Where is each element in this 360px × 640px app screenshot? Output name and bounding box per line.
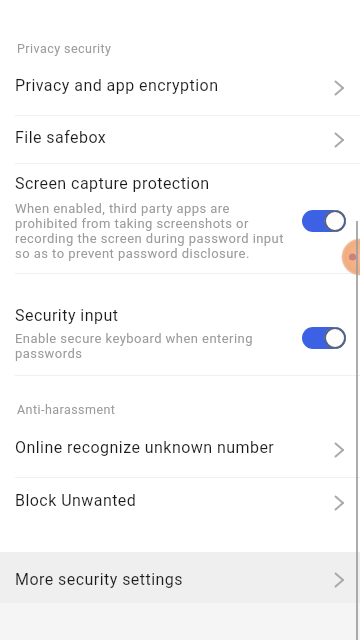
button[interactable]: File safebox [0, 116, 360, 163]
button[interactable]: Security input [0, 274, 360, 375]
button[interactable]: Online recognize unknown number [0, 424, 360, 477]
staticText: Security input [15, 306, 119, 325]
staticText: Anti-harassment [17, 402, 116, 417]
staticText: File safebox [15, 128, 107, 147]
staticText: Screen capture protection [15, 174, 210, 193]
button[interactable]: Privacy and app encryption [0, 64, 360, 115]
button[interactable] [302, 327, 346, 349]
staticText: When enabled, third party apps are prohi… [15, 201, 284, 261]
staticText: Privacy security [17, 41, 112, 56]
staticText: Privacy and app encryption [15, 76, 219, 95]
staticText: Block Unwanted [15, 491, 137, 510]
staticText: Enable secure keyboard when entering pas… [15, 331, 253, 361]
button[interactable]: Screen capture protection [0, 164, 360, 273]
staticText: More security settings [15, 570, 183, 589]
button[interactable]: Block Unwanted [0, 478, 360, 528]
button[interactable] [302, 210, 346, 232]
button[interactable]: More security settings [0, 552, 360, 603]
staticText: Online recognize unknown number [15, 438, 275, 457]
